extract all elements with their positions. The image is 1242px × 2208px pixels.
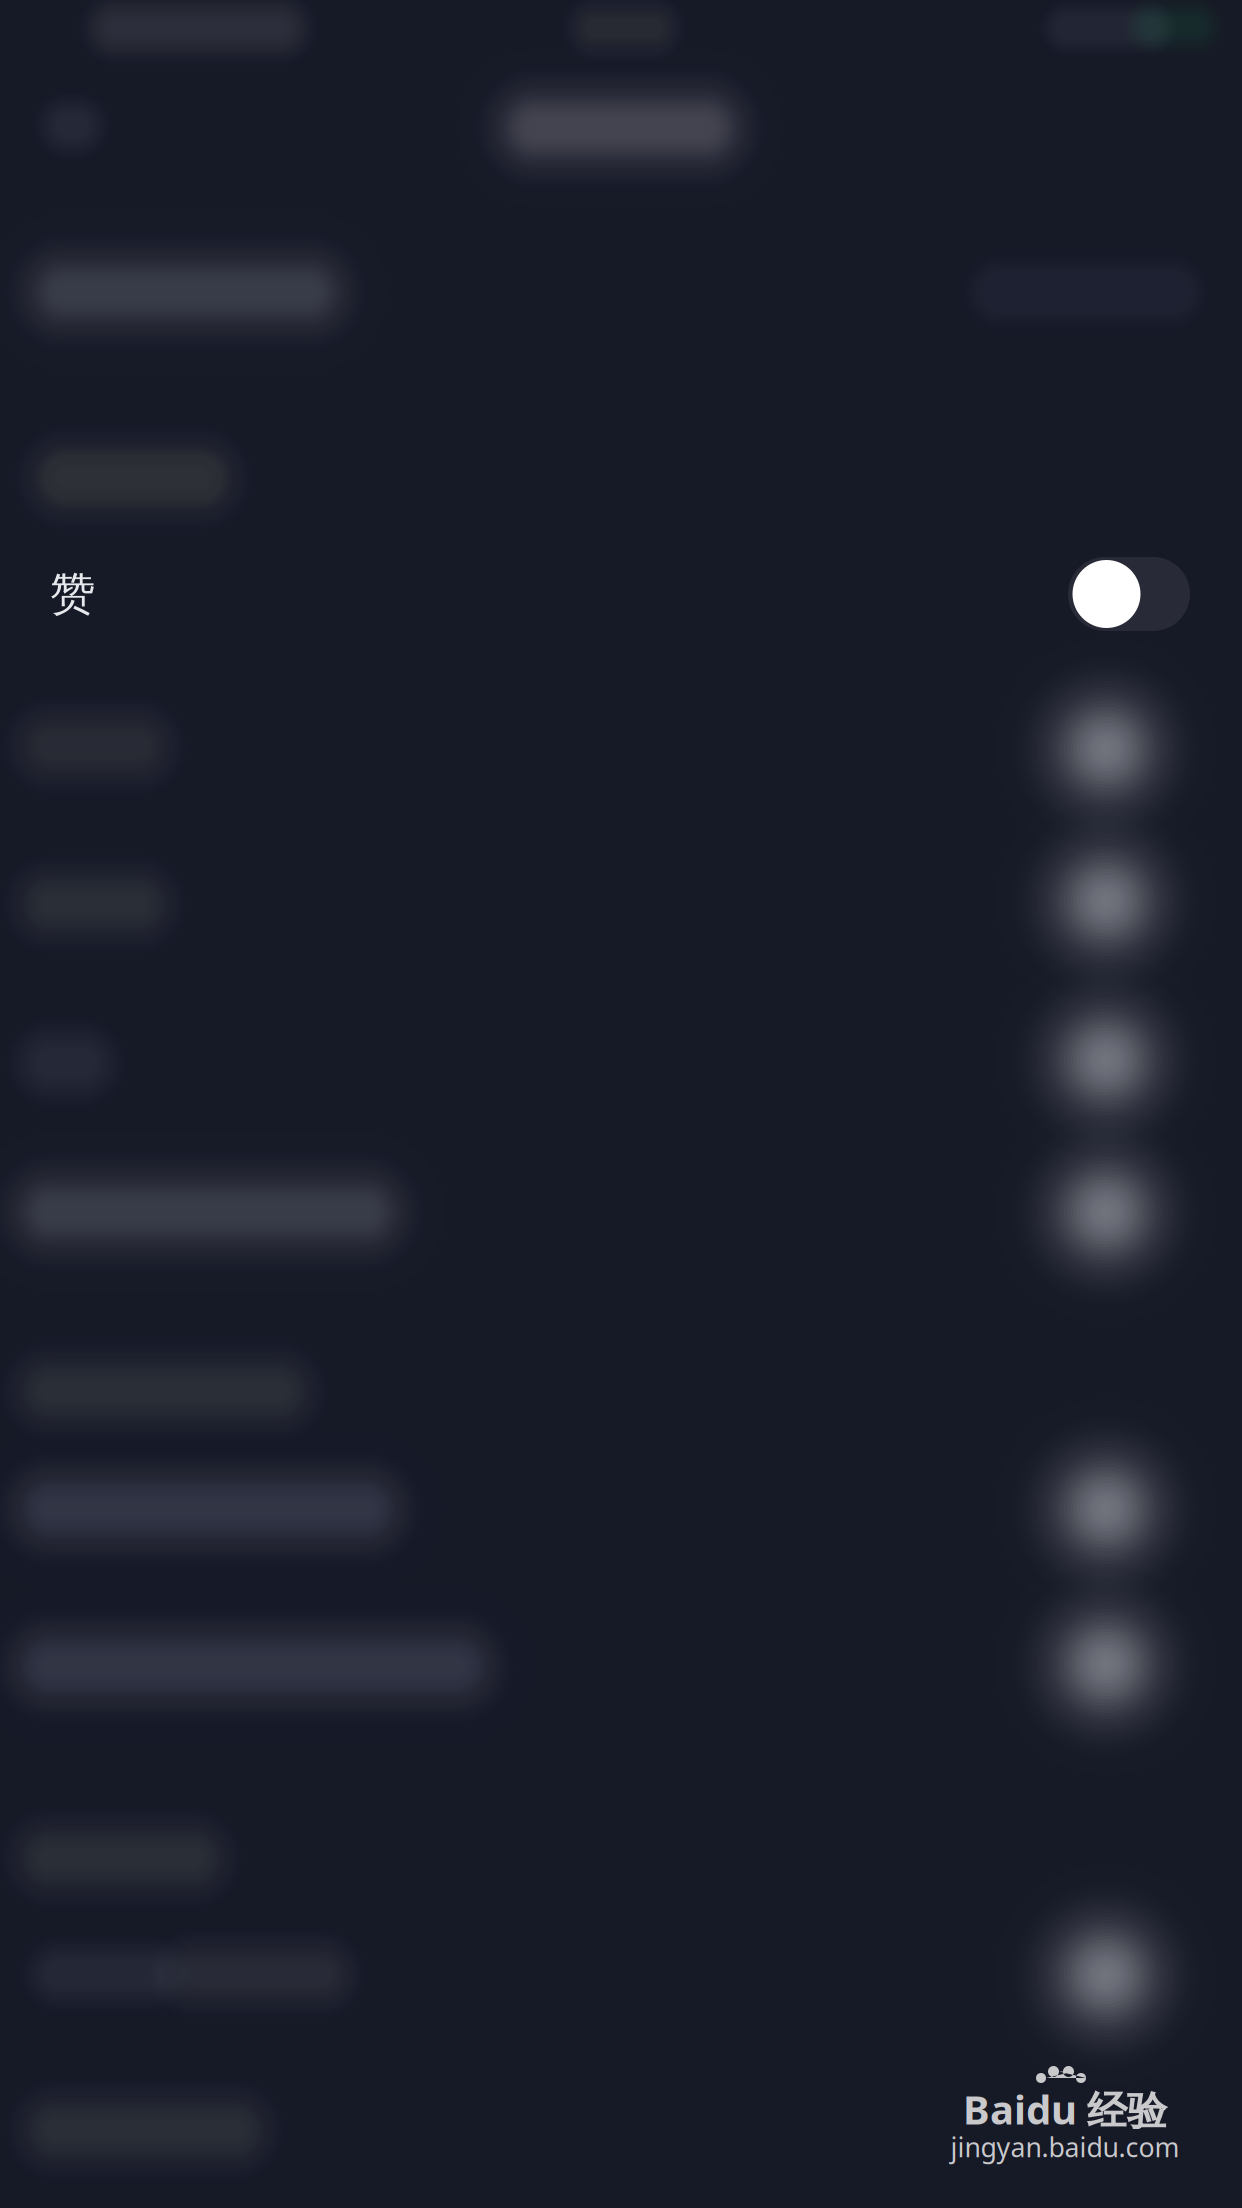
button[interactable]	[0, 838, 1242, 970]
button[interactable]	[0, 997, 1242, 1129]
staticText: Baidu 经验	[963, 2082, 1167, 2136]
button[interactable]	[0, 412, 1242, 544]
button[interactable]	[0, 226, 1242, 358]
button[interactable]: 赞	[0, 519, 1242, 669]
button[interactable]	[0, 1792, 1242, 1924]
staticText: 赞	[50, 565, 95, 622]
staticText: jingyan.baidu.com	[950, 2129, 1179, 2165]
button[interactable]	[0, 1325, 1242, 1457]
button[interactable]	[0, 1908, 1242, 2040]
button[interactable]	[0, 1600, 1242, 1732]
button[interactable]: Back	[12, 71, 132, 181]
button[interactable]	[0, 2064, 1242, 2196]
button[interactable]	[0, 1443, 1242, 1575]
button[interactable]	[0, 1146, 1242, 1278]
button[interactable]	[0, 680, 1242, 812]
